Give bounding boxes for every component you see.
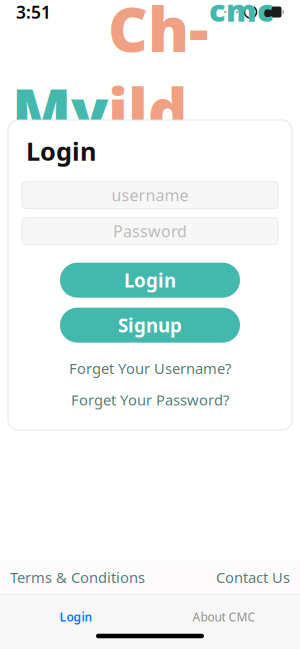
staticText: Login <box>124 268 176 292</box>
staticText: Login <box>59 609 92 625</box>
staticText: Forget Your Username? <box>69 359 231 378</box>
button[interactable]: username <box>22 182 278 209</box>
button[interactable]: About CMC <box>150 600 298 634</box>
button[interactable]: Signup <box>60 308 240 343</box>
staticText: 3:51 <box>16 0 51 23</box>
button[interactable]: Contact Us <box>216 568 290 587</box>
staticText: My <box>12 69 108 150</box>
staticText: cmc <box>209 0 274 30</box>
button[interactable]: Forget Your Password? <box>16 386 284 414</box>
staticText: Signup <box>118 313 182 337</box>
button[interactable]: Terms & Conditions <box>10 568 145 587</box>
button[interactable]: Password <box>22 218 278 245</box>
staticText: Terms & Conditions <box>10 568 145 587</box>
button[interactable]: Forget Your Username? <box>16 355 284 382</box>
staticText: Password <box>113 220 187 242</box>
staticText: About CMC <box>192 609 255 625</box>
staticText: Forget Your Password? <box>71 390 229 410</box>
button[interactable]: Login <box>60 263 240 298</box>
staticText: Login <box>26 134 96 168</box>
staticText: Contact Us <box>216 568 290 587</box>
staticText: Child <box>108 0 209 150</box>
button[interactable]: Login <box>2 600 150 634</box>
staticText: username <box>111 184 188 206</box>
